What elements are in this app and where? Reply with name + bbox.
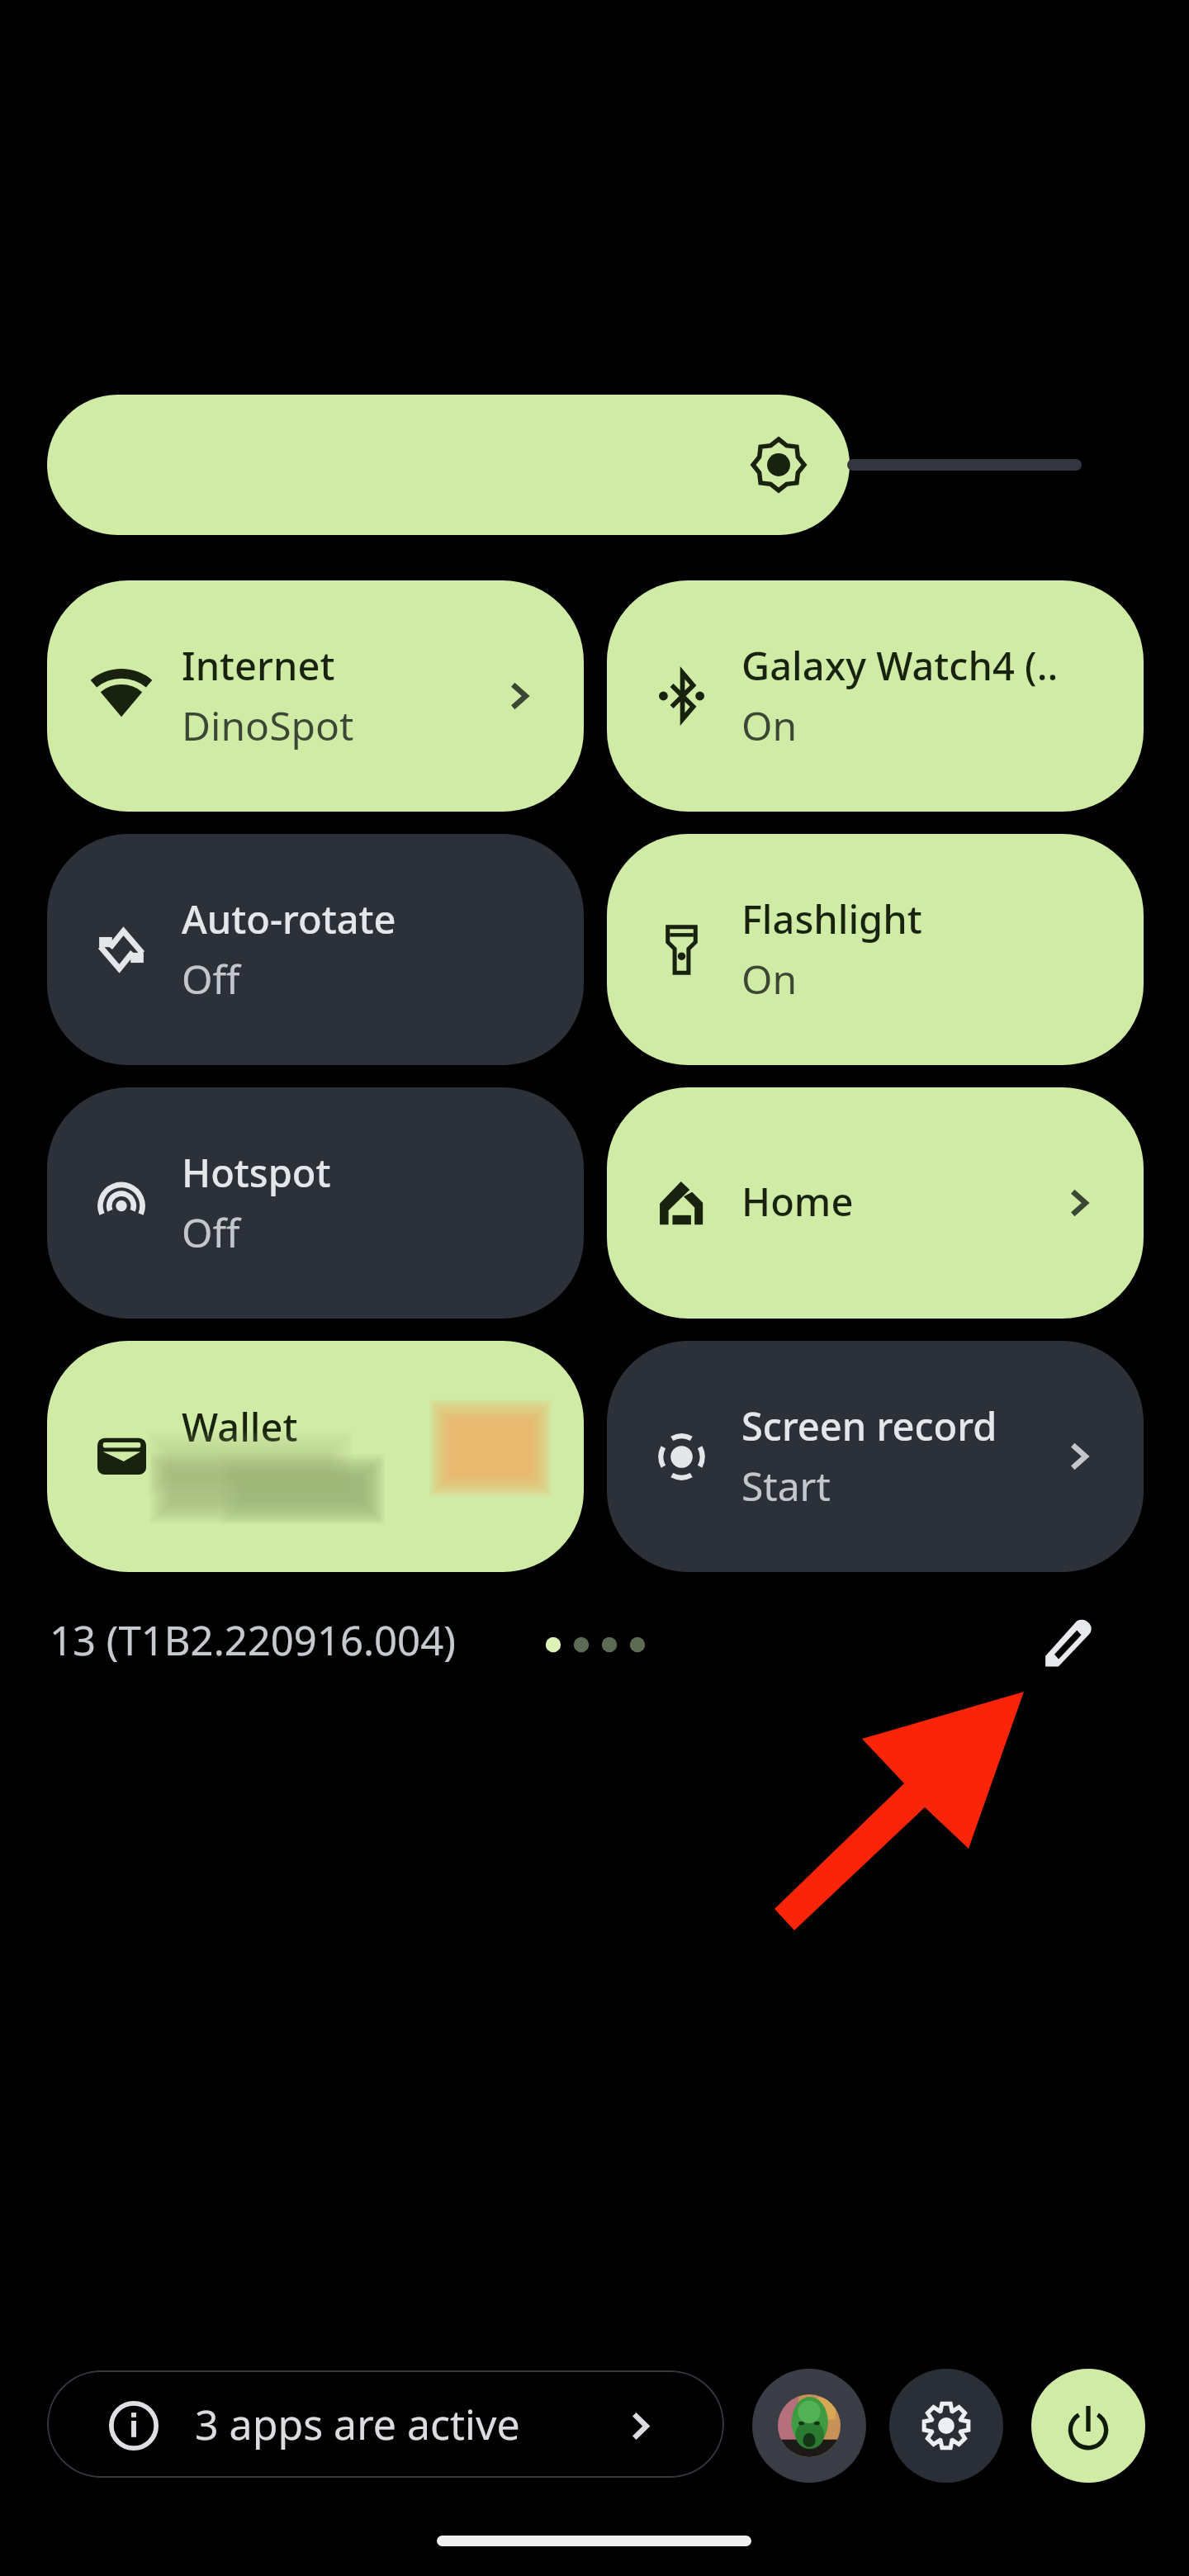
staticText: Off xyxy=(182,952,240,1006)
button[interactable]: Internet xyxy=(47,580,584,812)
button[interactable]: 3 apps are active xyxy=(47,2370,724,2478)
staticText: Internet xyxy=(182,639,335,692)
staticText: Galaxy Watch4 (.. xyxy=(741,639,1059,692)
staticText: 13 (T1B2.220916.004) xyxy=(50,1612,456,1668)
button[interactable]: Settings xyxy=(889,2369,1003,2483)
staticText: Flashlight xyxy=(741,893,922,945)
button[interactable]: Edit tiles xyxy=(1026,1601,1109,1683)
staticText: Hotspot xyxy=(182,1146,331,1199)
staticText: Off xyxy=(182,1205,240,1259)
button[interactable]: Auto-rotate xyxy=(47,834,584,1065)
button[interactable]: Power xyxy=(1031,2369,1145,2483)
staticText: 3 apps are active xyxy=(195,2396,520,2452)
staticText: Start xyxy=(741,1459,831,1513)
staticText: Wallet xyxy=(182,1400,298,1453)
button[interactable]: Account xyxy=(752,2369,866,2483)
button[interactable]: Home xyxy=(607,1087,1144,1319)
button[interactable]: Screen record xyxy=(607,1341,1144,1572)
button[interactable]: Galaxy Watch4 (.. xyxy=(607,580,1144,812)
button[interactable]: Hotspot xyxy=(47,1087,584,1319)
staticText: Home xyxy=(741,1175,854,1228)
button[interactable]: Wallet xyxy=(47,1341,584,1572)
staticText: DinoSpot xyxy=(182,698,354,752)
button[interactable]: Brightness xyxy=(47,395,850,535)
staticText: Screen record xyxy=(741,1399,997,1452)
staticText: On xyxy=(741,952,798,1006)
staticText: On xyxy=(741,698,798,752)
staticText: Auto-rotate xyxy=(182,893,396,945)
button[interactable]: Flashlight xyxy=(607,834,1144,1065)
